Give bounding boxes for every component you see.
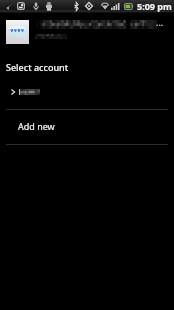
staticText: 5:09 pm xyxy=(137,0,172,12)
button[interactable]: ... xyxy=(0,15,174,49)
staticText: ... xyxy=(156,16,164,28)
button[interactable] xyxy=(0,82,174,102)
button[interactable]: Add new xyxy=(0,109,174,143)
staticText: Select account xyxy=(6,61,69,73)
staticText: Add new xyxy=(18,120,55,132)
